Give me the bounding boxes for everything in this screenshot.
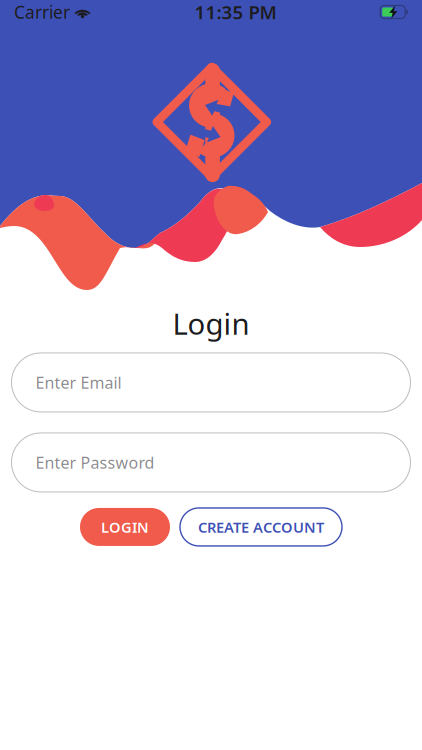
button[interactable]: LOGIN	[80, 508, 170, 546]
staticText: 11:35 PM	[194, 0, 276, 24]
staticText: Enter Password	[35, 452, 154, 473]
staticText: CREATE ACCOUNT	[198, 517, 324, 537]
staticText: LOGIN	[101, 517, 149, 537]
button[interactable]: CREATE ACCOUNT	[180, 508, 342, 546]
staticText: Login	[172, 304, 249, 343]
staticText: Carrier	[14, 0, 70, 23]
staticText: Enter Email	[35, 372, 121, 393]
